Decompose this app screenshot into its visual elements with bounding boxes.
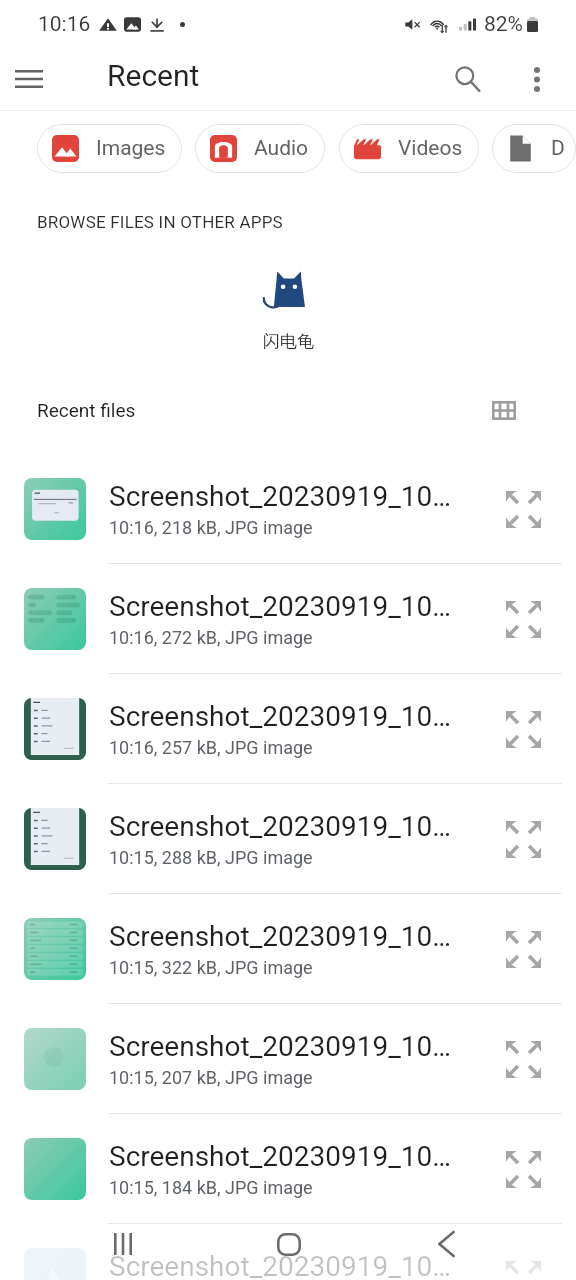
button[interactable]: Screenshot_20230919_10…	[0, 1114, 576, 1223]
button[interactable]: Screenshot_20230919_10…	[0, 674, 576, 783]
button[interactable]: Open navigation drawer	[6, 56, 52, 102]
staticText: Screenshot_20230919_10…	[109, 590, 452, 623]
staticText: Screenshot_20230919_10…	[109, 1140, 452, 1173]
staticText: Screenshot_20230919_10…	[109, 1250, 452, 1280]
button[interactable]: Screenshot_20230919_10…	[0, 1224, 576, 1280]
button[interactable]: Home	[265, 1220, 313, 1268]
staticText: 10:16	[38, 12, 91, 37]
button[interactable]: Screenshot_20230919_10…	[0, 894, 576, 1003]
button[interactable]: Screenshot_20230919_10…	[0, 454, 576, 563]
staticText: Screenshot_20230919_10…	[109, 480, 452, 513]
staticText: Images	[96, 136, 166, 161]
staticText: 10:15, 322 kB, JPG image	[109, 957, 313, 978]
button[interactable]: Expand	[492, 1028, 554, 1090]
staticText: 10:15, 288 kB, JPG image	[109, 847, 313, 868]
staticText: 82%	[484, 12, 523, 37]
button[interactable]: Switch to grid view	[482, 388, 526, 432]
staticText: BROWSE FILES IN OTHER APPS	[37, 212, 283, 232]
button[interactable]: 闪电龟	[249, 270, 328, 352]
staticText: 10:16, 218 kB, JPG image	[109, 517, 313, 538]
staticText: Audio	[254, 136, 309, 161]
staticText: Documents	[551, 136, 576, 161]
staticText: 10:16, 272 kB, JPG image	[109, 627, 313, 648]
staticText: Screenshot_20230919_10…	[109, 810, 452, 843]
button[interactable]: Expand	[492, 588, 554, 650]
button[interactable]: Images	[37, 124, 182, 173]
staticText: Screenshot_20230919_10…	[109, 1030, 452, 1063]
button[interactable]: Expand	[492, 808, 554, 870]
staticText: 闪电龟	[263, 331, 314, 352]
staticText: 10:16, 257 kB, JPG image	[109, 737, 313, 758]
button[interactable]: Videos	[339, 124, 479, 173]
button[interactable]: Expand	[492, 1248, 554, 1280]
staticText: Videos	[398, 136, 463, 161]
staticText: Screenshot_20230919_10…	[109, 920, 452, 953]
staticText: 10:15, 184 kB, JPG image	[109, 1177, 313, 1198]
staticText: 10:15, 207 kB, JPG image	[109, 1067, 313, 1088]
button[interactable]: Expand	[492, 698, 554, 760]
button[interactable]: Documents	[492, 124, 576, 173]
button[interactable]: Expand	[492, 1138, 554, 1200]
button[interactable]: Screenshot_20230919_10…	[0, 564, 576, 673]
button[interactable]: Back	[422, 1220, 470, 1268]
staticText: Screenshot_20230919_10…	[109, 700, 452, 733]
button[interactable]: Screenshot_20230919_10…	[0, 784, 576, 893]
button[interactable]: Expand	[492, 918, 554, 980]
button[interactable]: Expand	[492, 478, 554, 540]
staticText: Recent	[107, 58, 200, 93]
button[interactable]: Audio	[195, 124, 325, 173]
button[interactable]: More options	[513, 55, 561, 103]
button[interactable]: Search	[443, 55, 491, 103]
staticText: Recent files	[37, 399, 136, 421]
button[interactable]: Recents	[99, 1220, 147, 1268]
button[interactable]: Screenshot_20230919_10…	[0, 1004, 576, 1113]
